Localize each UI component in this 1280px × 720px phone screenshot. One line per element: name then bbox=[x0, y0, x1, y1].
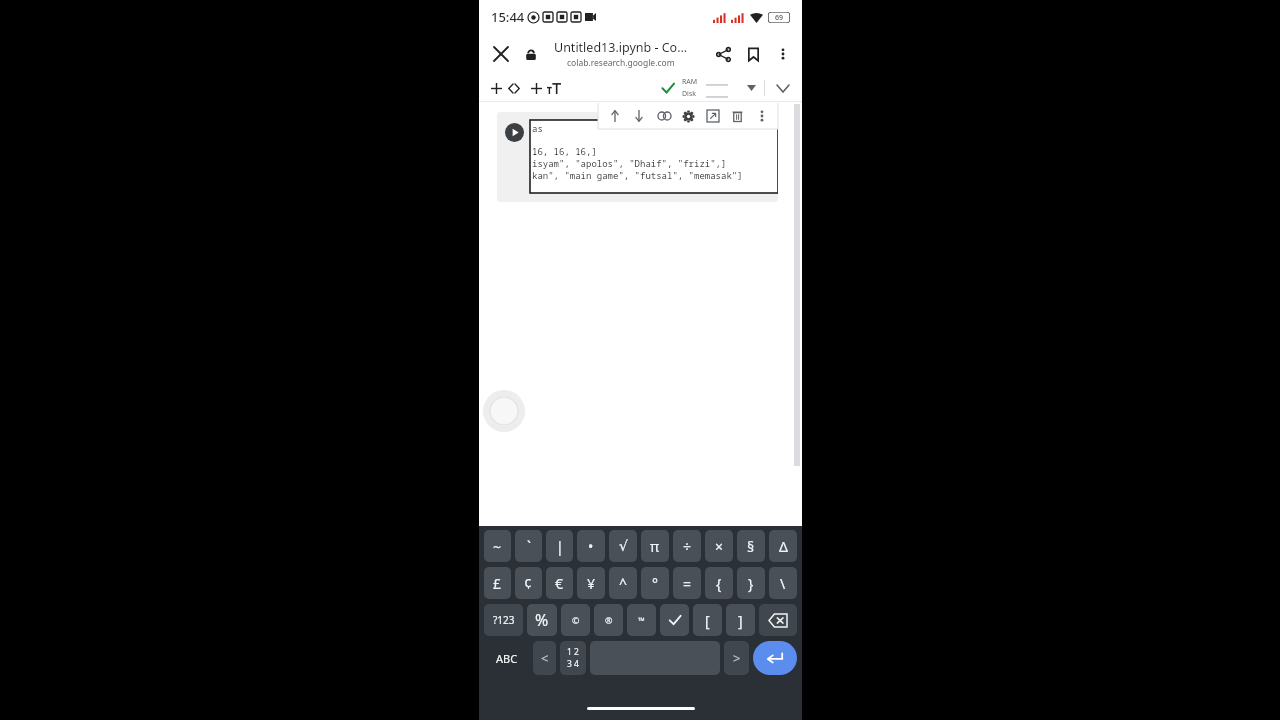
staticText: Δ bbox=[779, 537, 788, 556]
staticText: as bbox=[532, 122, 543, 134]
staticText: 1 2 bbox=[567, 646, 579, 658]
staticText: √ bbox=[619, 538, 628, 554]
staticText: 3 4 bbox=[567, 658, 579, 670]
staticText: ® bbox=[605, 614, 613, 626]
staticText: \ bbox=[780, 574, 786, 593]
staticText: ^ bbox=[619, 574, 628, 593]
button[interactable]: Run cell bbox=[497, 112, 778, 202]
button[interactable]: = bbox=[673, 567, 701, 599]
button[interactable]: Numbers bbox=[560, 641, 586, 675]
staticText: colab.research.google.com bbox=[567, 57, 675, 69]
staticText: £ bbox=[493, 574, 502, 593]
button[interactable]: Δ bbox=[769, 530, 797, 562]
button[interactable]: More cell actions bbox=[751, 105, 773, 127]
staticText: ¥ bbox=[587, 574, 596, 593]
button[interactable]: π bbox=[641, 530, 669, 562]
button[interactable]: Resource menu bbox=[741, 78, 761, 98]
button[interactable]: Backspace bbox=[759, 604, 797, 636]
staticText: ~ bbox=[493, 537, 502, 556]
button[interactable]: More options bbox=[768, 39, 798, 69]
staticText: § bbox=[747, 537, 755, 556]
staticText: ` bbox=[527, 537, 531, 556]
button[interactable]: \ bbox=[769, 567, 797, 599]
staticText: ] bbox=[738, 611, 743, 630]
button[interactable]: ° bbox=[641, 567, 669, 599]
staticText: isyam", "apolos", "Dhaif", "frizi",] bbox=[532, 157, 727, 169]
button[interactable]: Untitled13.ipynb - Co... bbox=[541, 39, 701, 69]
button[interactable]: √ bbox=[609, 530, 637, 562]
button[interactable]: © bbox=[561, 604, 590, 636]
button[interactable]: ® bbox=[594, 604, 623, 636]
staticText: RAM bbox=[682, 77, 698, 87]
button[interactable]: Previous bbox=[533, 641, 556, 675]
button[interactable]: Copy link bbox=[653, 105, 675, 127]
staticText: ÷ bbox=[683, 537, 692, 556]
button[interactable]: ™ bbox=[627, 604, 656, 636]
button[interactable]: Move cell down bbox=[628, 105, 650, 127]
staticText: ™ bbox=[638, 614, 645, 626]
button[interactable]: × bbox=[705, 530, 733, 562]
button[interactable]: ÷ bbox=[673, 530, 701, 562]
button[interactable]: £ bbox=[484, 567, 511, 599]
button[interactable]: Move cell up bbox=[604, 105, 626, 127]
staticText: 69 bbox=[775, 13, 784, 23]
button[interactable]: Share bbox=[708, 39, 738, 69]
staticText: { bbox=[716, 574, 722, 593]
button[interactable]: Symbols bbox=[484, 604, 523, 636]
button[interactable]: | bbox=[546, 530, 573, 562]
button[interactable]: Bookmark bbox=[738, 39, 768, 69]
button[interactable]: Delete cell bbox=[726, 105, 748, 127]
staticText: • bbox=[588, 537, 594, 556]
button[interactable]: % bbox=[527, 604, 557, 636]
button[interactable]: [ bbox=[693, 604, 722, 636]
button[interactable]: Close bbox=[487, 40, 515, 68]
button[interactable]: Add code cell bbox=[487, 79, 505, 97]
button[interactable]: Run cell bbox=[505, 123, 524, 142]
staticText: kan", "main game", "futsal", "memasak"] bbox=[532, 169, 743, 181]
staticText: = bbox=[683, 574, 692, 593]
staticText: | bbox=[556, 537, 564, 556]
button[interactable]: } bbox=[737, 567, 765, 599]
staticText: % bbox=[535, 609, 549, 631]
button[interactable]: • bbox=[577, 530, 605, 562]
button[interactable]: Connected bbox=[657, 77, 679, 99]
staticText: [ bbox=[705, 611, 710, 630]
staticText: Disk bbox=[682, 89, 697, 99]
button[interactable]: ~ bbox=[484, 530, 511, 562]
button[interactable]: ¥ bbox=[577, 567, 605, 599]
button[interactable]: Add text cell bbox=[527, 79, 545, 97]
button[interactable]: Next bbox=[724, 641, 749, 675]
staticText: Untitled13.ipynb - Co... bbox=[554, 39, 688, 56]
button[interactable]: Enter bbox=[753, 641, 797, 675]
button[interactable]: { bbox=[705, 567, 733, 599]
button[interactable]: § bbox=[737, 530, 765, 562]
staticText: > bbox=[733, 649, 741, 667]
staticText: ?123 bbox=[493, 613, 515, 627]
staticText: ABC bbox=[496, 651, 518, 666]
button[interactable]: Open in new bbox=[702, 105, 724, 127]
button[interactable]: € bbox=[546, 567, 573, 599]
button[interactable]: Cell settings bbox=[677, 105, 699, 127]
button[interactable]: Expand bbox=[772, 77, 794, 99]
button[interactable]: Text bbox=[545, 79, 563, 97]
button[interactable]: ABC bbox=[484, 641, 529, 675]
staticText: × bbox=[715, 537, 724, 556]
staticText: © bbox=[572, 614, 580, 626]
button[interactable]: ] bbox=[726, 604, 755, 636]
staticText: 16, 16, 16,] bbox=[532, 145, 597, 157]
staticText: < bbox=[541, 649, 549, 667]
staticText: ° bbox=[652, 574, 658, 593]
button[interactable]: ^ bbox=[609, 567, 637, 599]
staticText: π bbox=[650, 537, 660, 556]
button[interactable]: ¢ bbox=[515, 567, 542, 599]
button[interactable]: Check mark bbox=[660, 604, 689, 636]
staticText: 15:44 bbox=[491, 8, 525, 26]
other: Secure bbox=[521, 44, 541, 64]
staticText: } bbox=[748, 574, 754, 593]
button[interactable]: ` bbox=[515, 530, 542, 562]
button[interactable]: Code bbox=[505, 79, 523, 97]
staticText: ¢ bbox=[524, 574, 533, 593]
staticText: € bbox=[555, 574, 564, 593]
